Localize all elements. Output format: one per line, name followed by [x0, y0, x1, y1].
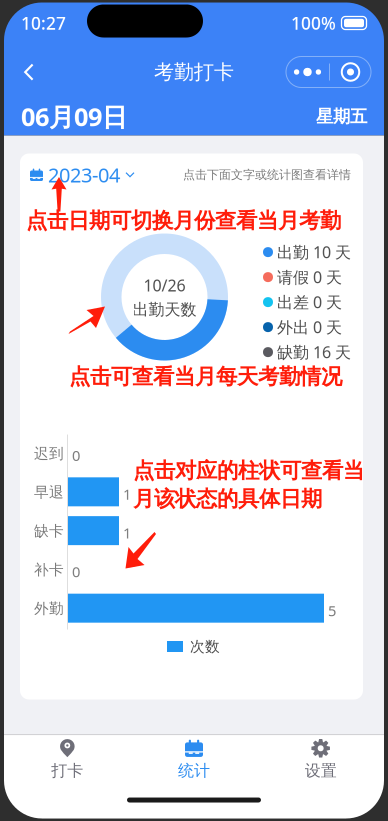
- staticText: 0: [72, 445, 80, 465]
- staticText: 外出 0 天: [277, 316, 342, 338]
- staticText: 点击日期可切换月份查看当月考勤: [26, 207, 341, 234]
- button[interactable]: Back: [9, 50, 49, 94]
- button[interactable]: 出勤天数 10/26: [101, 233, 228, 360]
- staticText: 06月09日: [21, 100, 127, 133]
- staticText: 统计: [178, 761, 210, 780]
- staticText: 1: [123, 523, 131, 543]
- button[interactable]: [68, 594, 324, 623]
- staticText: 0: [72, 562, 80, 581]
- staticText: 1: [123, 484, 131, 504]
- button[interactable]: [68, 516, 119, 545]
- button[interactable]: 2023-04: [28, 159, 137, 190]
- staticText: 打卡: [51, 761, 83, 780]
- staticText: 2023-04: [48, 161, 120, 188]
- staticText: 外勤: [34, 600, 64, 618]
- staticText: 出勤 10 天: [277, 241, 351, 263]
- staticText: 100%: [291, 11, 336, 34]
- staticText: 请假 0 天: [277, 266, 342, 288]
- staticText: 点击下面文字或统计图查看详情: [183, 167, 351, 182]
- button[interactable]: 打卡: [4, 735, 131, 784]
- staticText: 早退: [34, 483, 64, 501]
- staticText: 次数: [190, 637, 220, 655]
- button[interactable]: [68, 477, 119, 506]
- staticText: 设置: [305, 761, 337, 780]
- staticText: 缺勤 16 天: [277, 341, 351, 363]
- staticText: 10:27: [21, 11, 66, 34]
- staticText: 10/26: [143, 274, 185, 296]
- staticText: 迟到: [34, 444, 64, 462]
- staticText: 点击可查看当月每天考勤情况: [69, 363, 342, 390]
- button[interactable]: More options: [286, 56, 371, 87]
- button[interactable]: 统计: [131, 735, 257, 784]
- staticText: 补卡: [34, 561, 64, 579]
- staticText: 5: [328, 601, 336, 620]
- staticText: 月该状态的具体日期: [133, 486, 322, 512]
- staticText: 出勤天数: [132, 300, 196, 319]
- staticText: 点击对应的柱状可查看当: [133, 457, 364, 484]
- staticText: 星期五: [316, 106, 367, 127]
- staticText: 考勤打卡: [154, 60, 234, 84]
- button[interactable]: 设置: [257, 735, 384, 784]
- staticText: 出差 0 天: [277, 291, 342, 313]
- staticText: 缺卡: [34, 522, 64, 540]
